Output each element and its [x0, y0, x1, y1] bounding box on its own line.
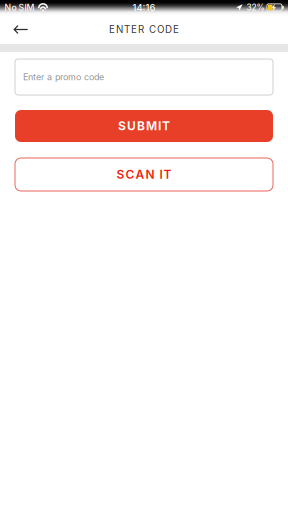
staticText: E N T E R C O D E [109, 24, 179, 35]
staticText: S C A N I T [116, 167, 171, 182]
button[interactable]: Enter a promo code [15, 59, 273, 95]
button[interactable]: S U B M I T [15, 110, 273, 142]
staticText: S U B M I T [118, 119, 170, 133]
staticText: 32% [246, 2, 264, 12]
staticText: Enter a promo code [23, 72, 104, 82]
button[interactable]: Back [0, 15, 42, 44]
staticText: No SIM [4, 2, 34, 13]
button[interactable]: S C A N I T [15, 158, 273, 191]
staticText: 14:16 [132, 2, 155, 13]
